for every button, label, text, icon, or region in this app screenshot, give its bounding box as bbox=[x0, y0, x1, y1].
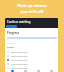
button[interactable]: Item name here bbox=[5, 62, 58, 66]
button[interactable]: Item name here bbox=[5, 66, 58, 70]
button[interactable]: Nav 1 bbox=[19, 70, 32, 72]
staticText: Pick up where you left off bbox=[0, 3, 64, 14]
button[interactable] bbox=[6, 25, 17, 28]
staticText: Chapter 4 bbox=[7, 41, 18, 44]
button[interactable]: Item name here bbox=[5, 58, 58, 62]
staticText: Item name here bbox=[11, 55, 28, 58]
staticText: Item name here bbox=[11, 51, 28, 54]
button[interactable]: Item name here bbox=[5, 50, 58, 54]
button[interactable]: Nav 2 bbox=[32, 70, 45, 72]
button[interactable]: Nav 0 bbox=[5, 70, 19, 72]
staticText: Item name here bbox=[11, 63, 28, 66]
button[interactable]: Item name here bbox=[5, 54, 58, 58]
staticText: Item name here bbox=[11, 59, 28, 62]
staticText: Saved bbox=[7, 45, 15, 48]
button[interactable]: Nav 3 bbox=[45, 70, 58, 72]
staticText: Continue watching bbox=[7, 20, 31, 24]
staticText: Item name here bbox=[11, 67, 28, 70]
staticText: Progress bbox=[7, 31, 20, 35]
button[interactable]: Continue watching bbox=[5, 18, 58, 28]
